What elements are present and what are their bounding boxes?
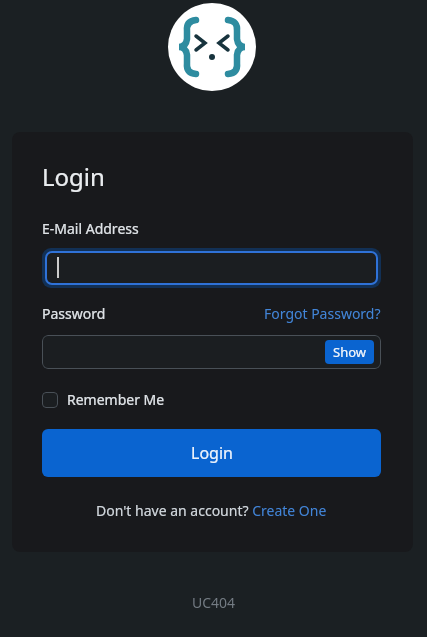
staticText: Forgot Password? bbox=[264, 304, 381, 323]
staticText: Remember Me bbox=[67, 390, 165, 409]
button[interactable]: Show bbox=[42, 335, 381, 369]
button[interactable]: Show bbox=[325, 340, 374, 364]
button[interactable] bbox=[47, 253, 376, 283]
button[interactable]: Login bbox=[42, 429, 381, 477]
staticText: E-Mail Address bbox=[42, 219, 139, 238]
button[interactable]: Forgot Password? bbox=[264, 304, 381, 323]
button[interactable]: Remember Me bbox=[42, 390, 165, 409]
staticText: Password bbox=[42, 304, 106, 323]
staticText: Login bbox=[191, 442, 233, 464]
staticText: Show bbox=[333, 343, 366, 361]
button[interactable]: Don't have an account? Create One bbox=[42, 501, 381, 520]
staticText: Don't have an account? Create One bbox=[96, 501, 327, 520]
staticText: Login bbox=[42, 160, 105, 193]
staticText: UC404 bbox=[192, 593, 236, 612]
